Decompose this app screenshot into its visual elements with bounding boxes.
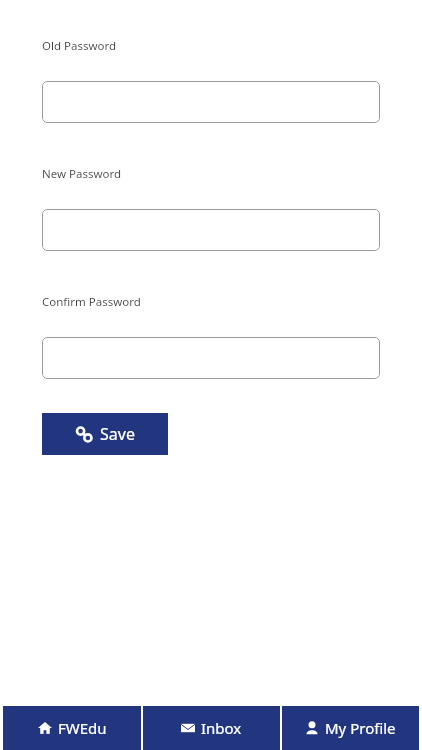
button[interactable]: FWEdu <box>3 706 141 750</box>
button[interactable]: Save <box>42 413 168 455</box>
staticText: Inbox <box>201 718 242 738</box>
staticText: My Profile <box>325 718 396 738</box>
button[interactable] <box>42 81 380 123</box>
staticText: New Password <box>42 166 122 182</box>
button[interactable] <box>42 337 380 379</box>
staticText: Save <box>100 423 135 445</box>
button[interactable] <box>42 209 380 251</box>
staticText: Confirm Password <box>42 294 141 310</box>
staticText: FWEdu <box>58 718 107 738</box>
button[interactable]: My Profile <box>282 706 419 750</box>
button[interactable]: Inbox <box>143 706 280 750</box>
staticText: Old Password <box>42 38 117 54</box>
